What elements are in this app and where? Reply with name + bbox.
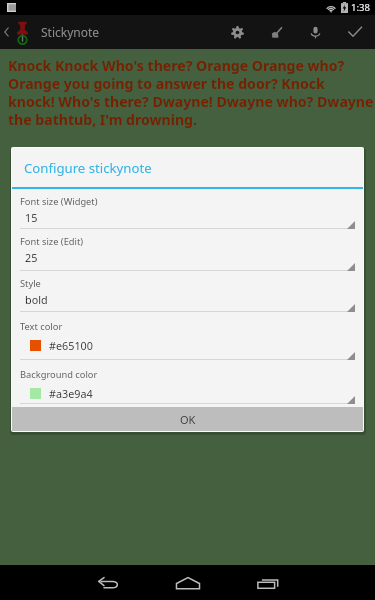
button[interactable]: Back: [69, 565, 147, 600]
button[interactable]: Recent apps: [229, 565, 307, 600]
staticText: Text color: [20, 320, 63, 333]
staticText: bold: [25, 292, 48, 307]
button[interactable]: Clear note: [257, 15, 296, 49]
staticText: Font size (Edit): [20, 235, 84, 248]
staticText: Style: [20, 277, 41, 290]
staticText: #e65100: [49, 338, 93, 353]
staticText: #a3e9a4: [49, 386, 93, 401]
staticText: Font size (Widget): [20, 195, 98, 208]
button[interactable]: Settings: [217, 15, 257, 49]
staticText: 15: [25, 210, 38, 225]
button[interactable]: Save: [334, 15, 375, 49]
staticText: 25: [25, 250, 38, 265]
button[interactable]: OK: [12, 407, 363, 431]
staticText: Knock Knock Who's there? Orange Orange w…: [8, 56, 375, 129]
button[interactable]: Font size (Edit): [12, 229, 363, 271]
button[interactable]: Home: [149, 565, 227, 600]
button[interactable]: Style: [12, 271, 363, 312]
staticText: OK: [180, 412, 196, 427]
staticText: Configure stickynote: [24, 159, 152, 177]
button[interactable]: Text color: [12, 312, 363, 360]
button[interactable]: Background color: [12, 360, 363, 404]
staticText: 1:38: [351, 1, 370, 14]
button[interactable]: Font size (Widget): [12, 189, 363, 229]
staticText: Background color: [20, 368, 98, 381]
button[interactable]: Navigate up: [0, 15, 13, 49]
button[interactable]: Voice input: [296, 15, 334, 49]
staticText: Stickynote: [41, 24, 100, 40]
